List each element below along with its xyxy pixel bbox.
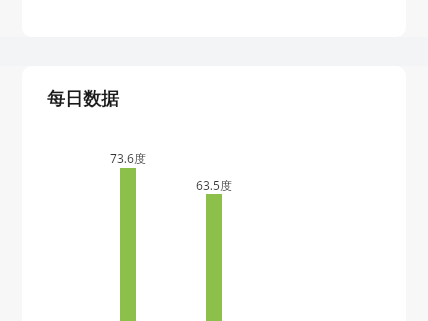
button[interactable]: 每日数据 — [47, 88, 119, 111]
staticText: 63.5度 — [178, 177, 250, 193]
staticText: 73.6度 — [92, 150, 164, 166]
staticText: 每日数据 — [47, 88, 119, 111]
